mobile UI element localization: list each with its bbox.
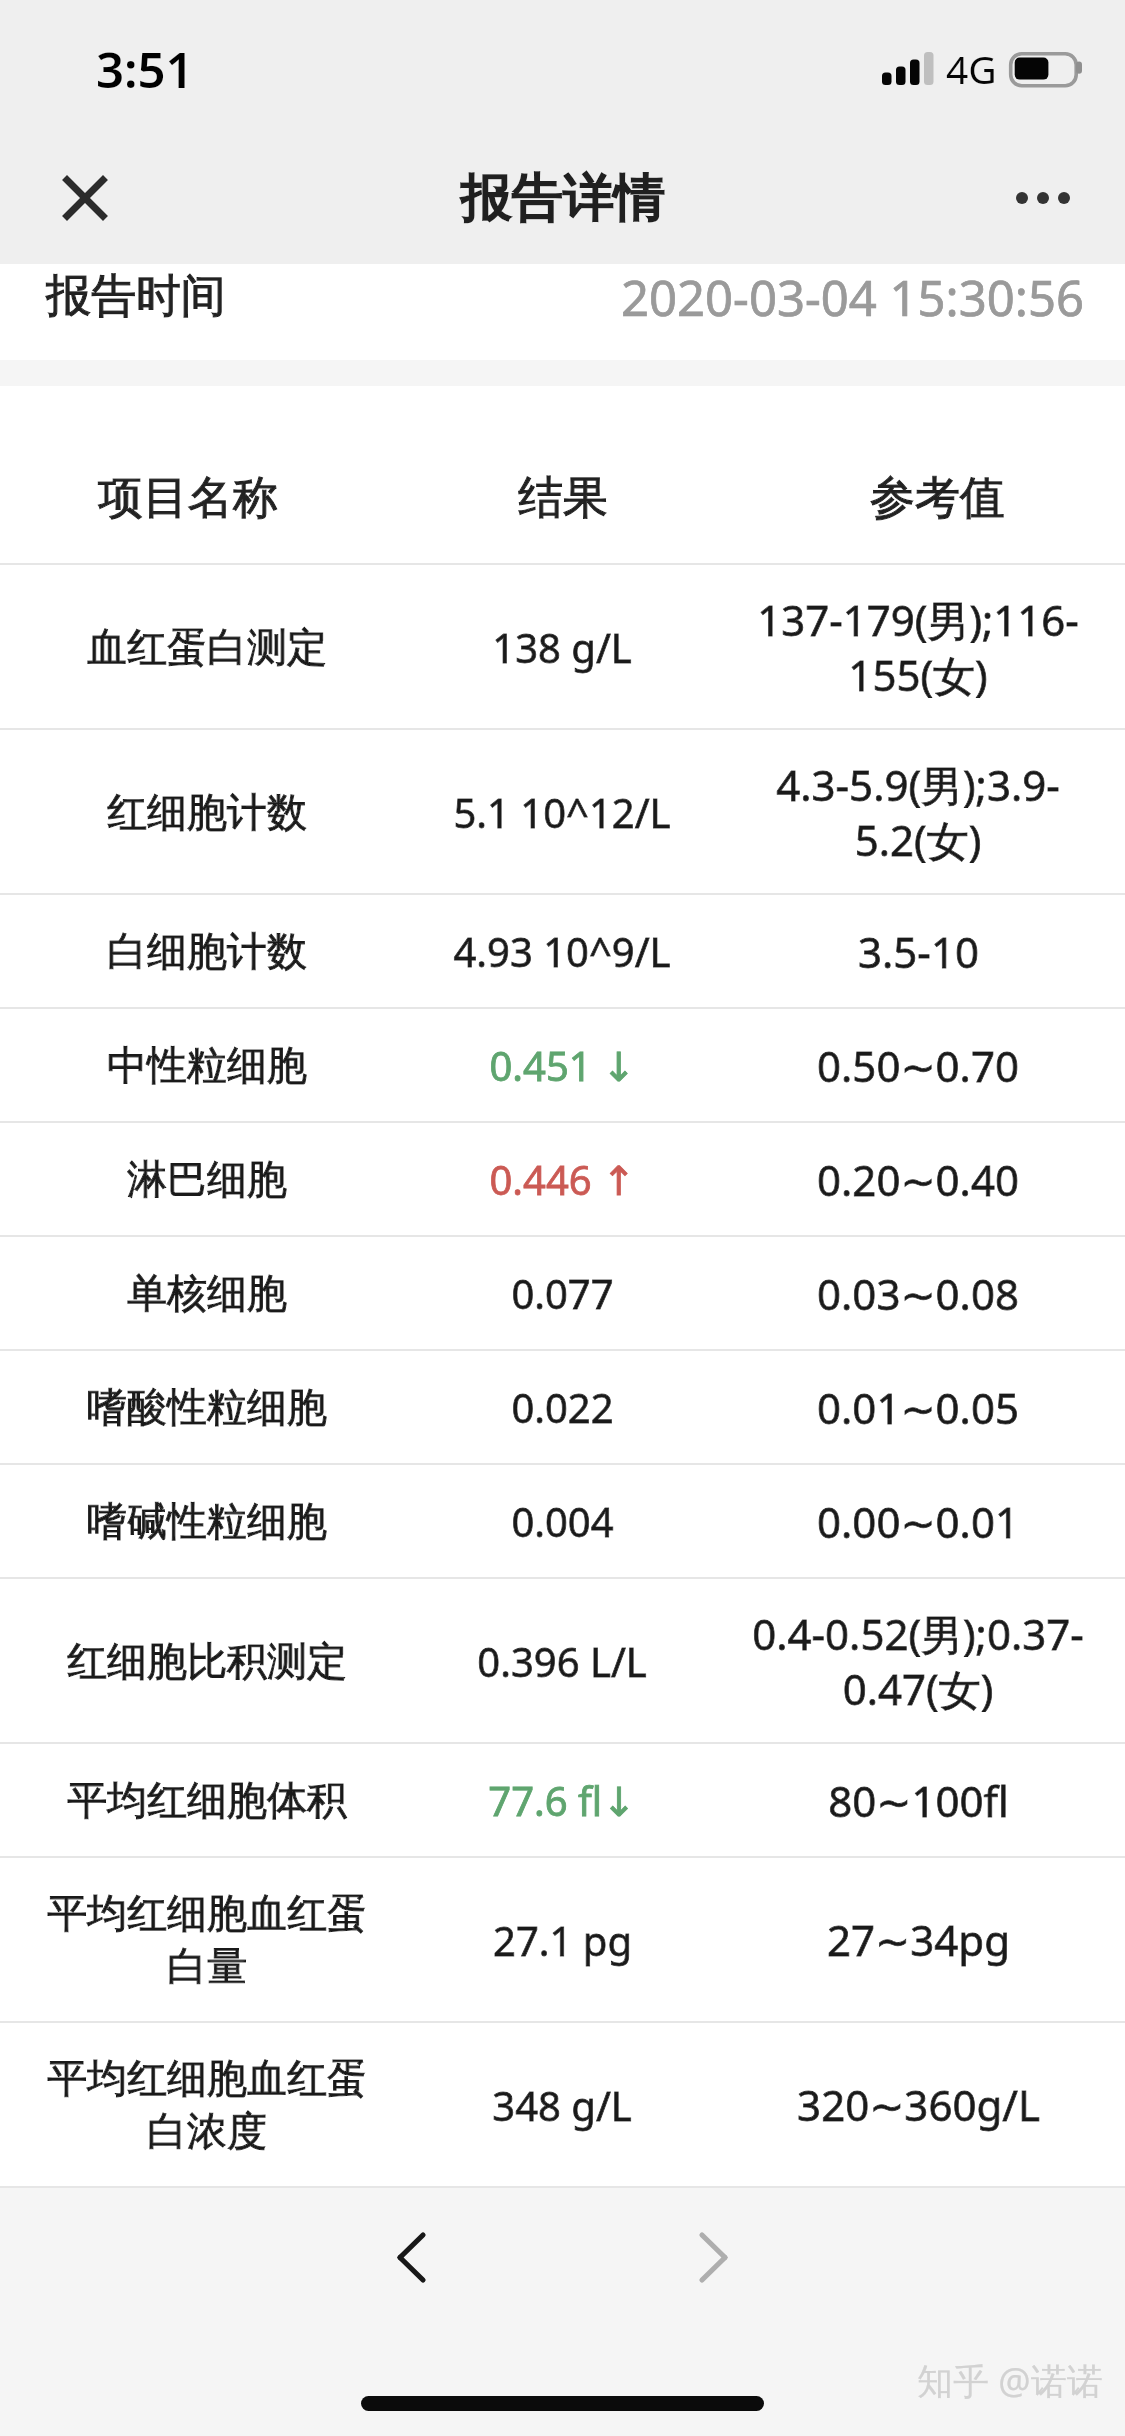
staticText: 0.03∼0.08 [817,1265,1019,1322]
staticText: 平均红细胞血红蛋 白浓度 [47,2053,367,2156]
staticText: 3.5-10 [858,923,979,980]
staticText: 知乎 @诺诺 [917,2356,1103,2405]
staticText: 0.446 ↑ [489,1152,636,1206]
staticText: 参考值 [870,470,1005,527]
button[interactable]: 红细胞比积测定 [0,1579,1125,1742]
staticText: 单核细胞 [127,1268,287,1318]
staticText: 报告详情 [461,166,665,230]
staticText: 结果 [518,470,608,527]
staticText: 4.3-5.9(男);3.9- 5.2(女) [776,756,1060,868]
staticText: 0.077 [511,1266,614,1320]
staticText: 0.022 [511,1380,614,1434]
staticText: 27∼34pg [827,1911,1010,1968]
staticText: 4.3-5.9(男);3.9- 5.2(女) [776,756,1060,868]
staticText: 2020-03-04 15:30:56 [621,264,1084,327]
staticText: 320∼360g/L [797,2076,1040,2133]
button[interactable]: Back [351,2197,471,2317]
staticText: 77.6 fl↓ [488,1773,636,1827]
staticText: 0.077 [511,1266,614,1320]
staticText: 白细胞计数 [107,926,307,976]
staticText: 0.451 ↓ [489,1038,636,1092]
staticText: 红细胞比积测定 [67,1636,347,1686]
staticText: 3.5-10 [858,923,979,980]
staticText: 0.00∼0.01 [817,1493,1019,1550]
staticText: 138 g/L [492,620,632,674]
staticText: 红细胞计数 [107,787,307,837]
staticText: 320∼360g/L [797,2076,1040,2133]
staticText: 0.01∼0.05 [817,1379,1019,1436]
button[interactable]: 平均红细胞血红蛋 白浓度 [0,2023,1125,2186]
staticText: 中性粒细胞 [107,1040,307,1090]
staticText: 0.50∼0.70 [817,1037,1019,1094]
staticText: 0.451 ↓ [489,1038,636,1092]
staticText: 0.4-0.52(男);0.37- 0.47(女) [752,1605,1084,1717]
staticText: 平均红细胞血红蛋 白量 [47,1888,367,1991]
staticText: 平均红细胞血红蛋 白浓度 [47,2053,367,2156]
staticText: 0.20∼0.40 [817,1151,1019,1208]
staticText: 红细胞比积测定 [67,1636,347,1686]
staticText: 白细胞计数 [107,926,307,976]
staticText: 血红蛋白测定 [87,622,327,672]
staticText: 嗜酸性粒细胞 [87,1382,327,1432]
staticText: 4G [946,42,997,95]
button[interactable]: 平均红细胞血红蛋 白量 [0,1858,1125,2021]
button[interactable]: 红细胞计数 [0,730,1125,893]
staticText: 血红蛋白测定 [87,622,327,672]
button[interactable]: More options [993,148,1093,248]
staticText: 嗜碱性粒细胞 [87,1496,327,1546]
staticText: 红细胞计数 [107,787,307,837]
staticText: 平均红细胞体积 [67,1775,347,1825]
staticText: 0.446 ↑ [489,1152,636,1206]
staticText: 报告时间 [46,268,226,325]
staticText: 0.03∼0.08 [817,1265,1019,1322]
button[interactable]: 平均红细胞体积 [0,1744,1125,1856]
staticText: 2020-03-04 15:30:56 [621,264,1084,327]
staticText: 0.4-0.52(男);0.37- 0.47(女) [752,1605,1084,1717]
staticText: 5.1 10^12/L [453,785,671,839]
button[interactable]: 白细胞计数 [0,895,1125,1007]
staticText: 平均红细胞体积 [67,1775,347,1825]
button[interactable]: 淋巴细胞 [0,1123,1125,1235]
button[interactable]: Close [39,152,131,244]
staticText: 5.1 10^12/L [453,785,671,839]
staticText: 348 g/L [492,2078,632,2132]
staticText: 0.01∼0.05 [817,1379,1019,1436]
staticText: 77.6 fl↓ [488,1773,636,1827]
staticText: 0.004 [511,1494,614,1548]
staticText: 项目名称 [98,470,278,527]
staticText: 报告时间 [46,268,226,325]
staticText: 淋巴细胞 [127,1154,287,1204]
staticText: 137-179(男);116- 155(女) [757,591,1079,703]
button[interactable]: Forward [653,2197,773,2317]
staticText: 348 g/L [492,2078,632,2132]
staticText: 0.50∼0.70 [817,1037,1019,1094]
staticText: 嗜酸性粒细胞 [87,1382,327,1432]
staticText: 0.20∼0.40 [817,1151,1019,1208]
staticText: 项目名称 [98,470,278,527]
button[interactable]: 嗜碱性粒细胞 [0,1465,1125,1577]
button[interactable]: 单核细胞 [0,1237,1125,1349]
staticText: 0.396 L/L [477,1634,647,1688]
staticText: 嗜碱性粒细胞 [87,1496,327,1546]
staticText: 80∼100fl [828,1772,1009,1829]
staticText: 4.93 10^9/L [453,924,671,978]
staticText: 结果 [518,470,608,527]
button[interactable]: 中性粒细胞 [0,1009,1125,1121]
staticText: 平均红细胞血红蛋 白量 [47,1888,367,1991]
staticText: 80∼100fl [828,1772,1009,1829]
staticText: 138 g/L [492,620,632,674]
staticText: 137-179(男);116- 155(女) [757,591,1079,703]
staticText: 报告详情 [461,166,665,230]
staticText: 4.93 10^9/L [453,924,671,978]
staticText: 27∼34pg [827,1911,1010,1968]
staticText: 0.00∼0.01 [817,1493,1019,1550]
staticText: 0.022 [511,1380,614,1434]
staticText: 参考值 [870,470,1005,527]
staticText: 27.1 pg [493,1913,632,1967]
staticText: 27.1 pg [493,1913,632,1967]
staticText: 0.396 L/L [477,1634,647,1688]
staticText: 淋巴细胞 [127,1154,287,1204]
button[interactable]: 血红蛋白测定 [0,565,1125,728]
staticText: 中性粒细胞 [107,1040,307,1090]
button[interactable]: 嗜酸性粒细胞 [0,1351,1125,1463]
